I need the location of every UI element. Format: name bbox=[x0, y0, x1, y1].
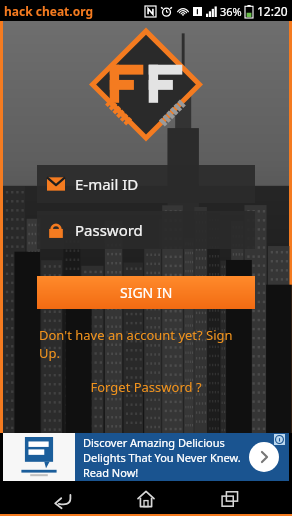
button[interactable]: Back bbox=[40, 481, 84, 516]
staticText: 36% bbox=[220, 4, 242, 19]
button[interactable]: Discover Amazing Delicious bbox=[3, 433, 289, 481]
staticText: Read Now! bbox=[83, 465, 139, 480]
staticText: Password bbox=[75, 220, 143, 240]
button[interactable]: Password bbox=[37, 211, 255, 249]
staticText: hack cheat.org bbox=[4, 3, 93, 19]
staticText: SIGN IN bbox=[120, 283, 173, 302]
staticText: 12:20 bbox=[257, 3, 288, 19]
staticText: Discover Amazing Delicious bbox=[83, 435, 225, 450]
button[interactable]: SIGN IN bbox=[37, 276, 255, 309]
staticText: E-mail ID bbox=[75, 174, 139, 194]
other: Open ad bbox=[249, 442, 279, 472]
button[interactable]: Home bbox=[124, 481, 168, 516]
button[interactable]: Recent apps bbox=[208, 481, 252, 516]
button[interactable]: E-mail ID bbox=[37, 165, 255, 203]
other: Ad info bbox=[274, 434, 285, 445]
button[interactable]: Don't have an account yet? Sign Up. bbox=[39, 326, 253, 362]
button[interactable]: Forget Password ? bbox=[3, 378, 289, 396]
staticText: Delights That You Never Knew. bbox=[83, 450, 241, 465]
